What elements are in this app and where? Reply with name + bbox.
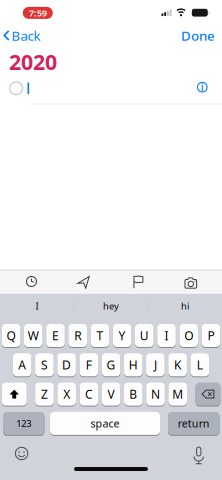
button[interactable]: Details [194, 79, 210, 95]
button[interactable]: T [91, 323, 109, 347]
button[interactable]: O [179, 323, 198, 347]
button[interactable]: V [102, 382, 120, 406]
button[interactable]: Add location [68, 270, 98, 294]
button[interactable]: Add photo [176, 271, 206, 295]
button[interactable]: Q [2, 323, 20, 347]
button[interactable]: Done [181, 26, 215, 44]
button[interactable]: Flag [123, 270, 153, 294]
staticText: O [184, 327, 193, 343]
staticText: H [129, 357, 138, 373]
button[interactable]: A [13, 353, 31, 377]
button[interactable]: Add time [16, 269, 46, 293]
staticText: C [85, 386, 93, 402]
staticText: M [172, 386, 183, 402]
button[interactable]: space [50, 411, 160, 435]
staticText: X [63, 386, 70, 402]
staticText: Done [181, 27, 215, 44]
staticText: D [62, 357, 71, 373]
button[interactable]: Z [35, 382, 54, 406]
button[interactable]: Emoji [8, 441, 36, 465]
staticText: 2020 [9, 48, 57, 76]
staticText: E [52, 327, 59, 343]
button[interactable]: hey [75, 293, 147, 319]
button[interactable]: Y [113, 323, 131, 347]
button[interactable]: E [46, 323, 65, 347]
button[interactable]: D [57, 353, 76, 377]
button[interactable]: B [124, 382, 143, 406]
staticText: Z [41, 386, 48, 402]
button[interactable]: U [135, 323, 154, 347]
staticText: Back [11, 27, 40, 44]
staticText: space [90, 416, 119, 430]
button[interactable]: G [102, 353, 120, 377]
staticText: F [86, 357, 92, 373]
staticText: U [140, 327, 149, 343]
staticText: W [28, 327, 39, 343]
button[interactable]: R [68, 323, 87, 347]
button[interactable]: C [80, 382, 98, 406]
staticText: G [106, 357, 115, 373]
button[interactable]: F [79, 353, 98, 377]
button[interactable]: Delete [195, 382, 220, 406]
button[interactable]: X [57, 382, 76, 406]
button[interactable]: return [168, 411, 219, 435]
button[interactable]: hi [149, 293, 221, 319]
button[interactable]: J [146, 353, 165, 377]
staticText: hey [103, 300, 119, 312]
button[interactable]: Back [3, 26, 40, 44]
staticText: 123 [16, 417, 31, 430]
button[interactable]: M [168, 382, 187, 406]
button[interactable]: K [168, 353, 187, 377]
staticText: Q [7, 327, 16, 343]
staticText: return [178, 416, 210, 430]
staticText: J [154, 357, 157, 373]
staticText: I [35, 300, 38, 312]
staticText: 7:59 [29, 7, 47, 19]
button[interactable]: P [202, 323, 220, 347]
staticText: hi [181, 300, 189, 312]
staticText: B [129, 386, 137, 402]
staticText: K [174, 357, 181, 373]
button[interactable]: H [124, 353, 142, 377]
button[interactable]: Complete reminder [9, 81, 23, 95]
staticText: i [201, 80, 204, 94]
button[interactable]: Shift [2, 382, 27, 406]
staticText: I [164, 327, 168, 343]
staticText: A [18, 357, 26, 373]
staticText: T [96, 327, 103, 343]
staticText: N [151, 386, 160, 402]
staticText: P [207, 327, 214, 343]
button[interactable]: I [157, 323, 176, 347]
button[interactable]: W [24, 323, 43, 347]
staticText: V [108, 386, 115, 402]
button[interactable]: 123 [3, 411, 44, 435]
button[interactable]: Dictate [185, 444, 213, 468]
button[interactable]: S [35, 353, 54, 377]
button[interactable]: I [1, 293, 73, 319]
staticText: R [74, 327, 81, 343]
staticText: L [197, 357, 203, 373]
button[interactable]: L [190, 353, 209, 377]
staticText: Y [119, 327, 126, 343]
staticText: S [41, 357, 48, 373]
button[interactable]: N [146, 382, 165, 406]
